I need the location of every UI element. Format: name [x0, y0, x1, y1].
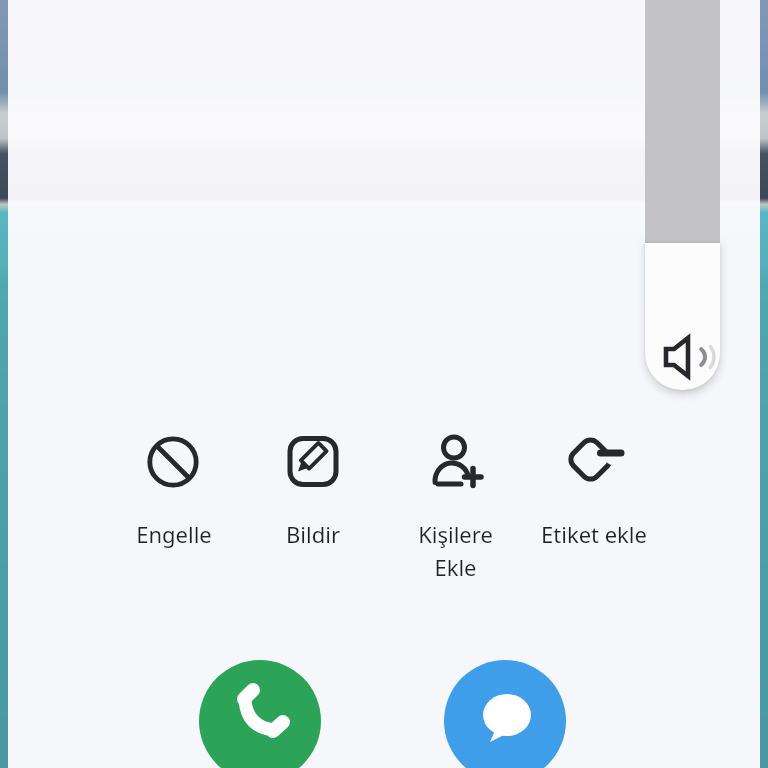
- staticText: Etiket ekle: [541, 519, 647, 549]
- staticText: Bildir: [286, 519, 340, 549]
- button[interactable]: Bildir: [243, 436, 383, 549]
- button[interactable]: [199, 660, 321, 768]
- button[interactable]: [645, 243, 720, 390]
- button[interactable]: Engelle: [104, 436, 244, 549]
- button[interactable]: Etiket ekle: [524, 436, 664, 549]
- button[interactable]: [444, 660, 566, 768]
- button[interactable]: Kişilere Ekle: [385, 436, 525, 582]
- staticText: Engelle: [136, 519, 212, 549]
- staticText: Kişilere Ekle: [418, 519, 493, 582]
